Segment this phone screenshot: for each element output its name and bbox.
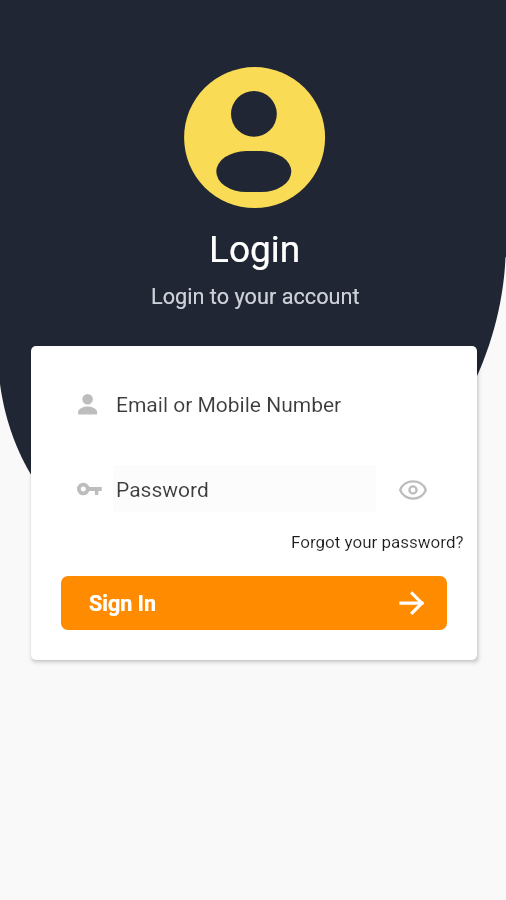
button[interactable]: Email or Mobile Number bbox=[31, 376, 477, 434]
staticText: Login bbox=[209, 228, 301, 271]
button[interactable]: Show password bbox=[391, 468, 435, 512]
staticText: Login to your account bbox=[151, 284, 360, 309]
button[interactable]: Password bbox=[31, 461, 477, 519]
staticText: Sign In bbox=[89, 591, 156, 616]
staticText: Password bbox=[116, 478, 209, 503]
staticText: Forgot your password? bbox=[291, 532, 464, 552]
button[interactable]: Forgot your password? bbox=[277, 527, 477, 557]
button[interactable]: Sign In bbox=[61, 576, 447, 630]
staticText: Email or Mobile Number bbox=[116, 393, 342, 418]
